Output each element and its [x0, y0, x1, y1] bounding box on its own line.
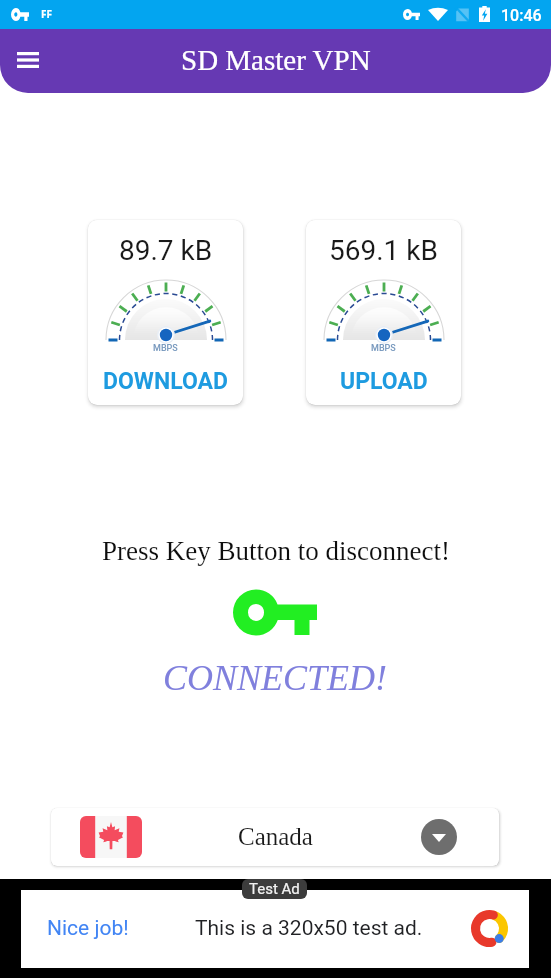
button[interactable]: Canada: [51, 808, 499, 866]
staticText: CONNECTED!: [163, 658, 388, 698]
staticText: 10:46: [501, 6, 542, 25]
staticText: MBPS: [371, 343, 396, 354]
staticText: UPLOAD: [340, 368, 428, 395]
staticText: Canada: [238, 823, 313, 851]
staticText: 89.7 kB: [119, 234, 213, 267]
button[interactable]: Menu: [9, 41, 47, 79]
staticText: FF: [41, 7, 52, 21]
button[interactable]: VPN key toggle: [233, 590, 317, 635]
staticText: Test Ad: [249, 880, 300, 898]
staticText: This is a 320x50 test ad.: [195, 916, 423, 941]
staticText: MBPS: [153, 343, 178, 354]
staticText: DOWNLOAD: [103, 368, 229, 395]
staticText: SD Master VPN: [181, 44, 371, 76]
button[interactable]: Choose country: [421, 819, 457, 855]
staticText: 569.1 kB: [329, 234, 438, 267]
button[interactable]: 89.7 kB: [88, 220, 243, 405]
button[interactable]: Nice job!: [21, 890, 529, 968]
staticText: Nice job!: [47, 916, 129, 941]
button[interactable]: 569.1 kB: [306, 220, 461, 405]
staticText: Press Key Button to disconnect!: [102, 536, 450, 566]
